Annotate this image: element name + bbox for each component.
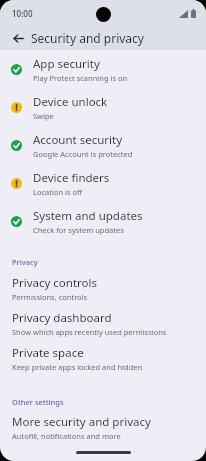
- staticText: Private space: [12, 345, 84, 361]
- staticText: Autofill, notifications and more: [12, 431, 121, 441]
- button[interactable]: Privacy controls: [0, 271, 206, 306]
- button[interactable]: System and updates: [0, 202, 206, 240]
- staticText: Google Account is protected: [33, 149, 133, 159]
- button[interactable]: App security: [0, 50, 206, 88]
- staticText: Permissions, controls: [12, 292, 88, 302]
- staticText: Keep private apps locked and hidden: [12, 362, 143, 372]
- staticText: Play Protect scanning is on: [33, 73, 128, 83]
- button[interactable]: Privacy dashboard: [0, 306, 206, 341]
- staticText: Device finders: [33, 170, 110, 186]
- button[interactable]: More security and privacy: [0, 411, 206, 444]
- staticText: 10:00: [12, 8, 33, 19]
- staticText: Swipe: [33, 111, 54, 121]
- button[interactable]: Back: [6, 26, 30, 50]
- staticText: Privacy dashboard: [12, 310, 112, 326]
- staticText: Privacy: [12, 257, 38, 267]
- staticText: More security and privacy: [12, 414, 151, 430]
- button[interactable]: Device unlock: [0, 88, 206, 126]
- button[interactable]: Device finders: [0, 164, 206, 202]
- staticText: Device unlock: [33, 94, 108, 110]
- staticText: Show which apps recently used permission…: [12, 327, 167, 337]
- staticText: Account security: [33, 132, 123, 148]
- staticText: Check for system updates: [33, 225, 124, 235]
- staticText: Privacy controls: [12, 275, 98, 291]
- button[interactable]: Private space: [0, 341, 206, 376]
- staticText: Other settings: [12, 397, 64, 407]
- staticText: App security: [33, 56, 100, 72]
- staticText: Location is off: [33, 187, 83, 197]
- staticText: Security and privacy: [31, 30, 144, 46]
- staticText: System and updates: [33, 208, 143, 224]
- button[interactable]: Account security: [0, 126, 206, 164]
